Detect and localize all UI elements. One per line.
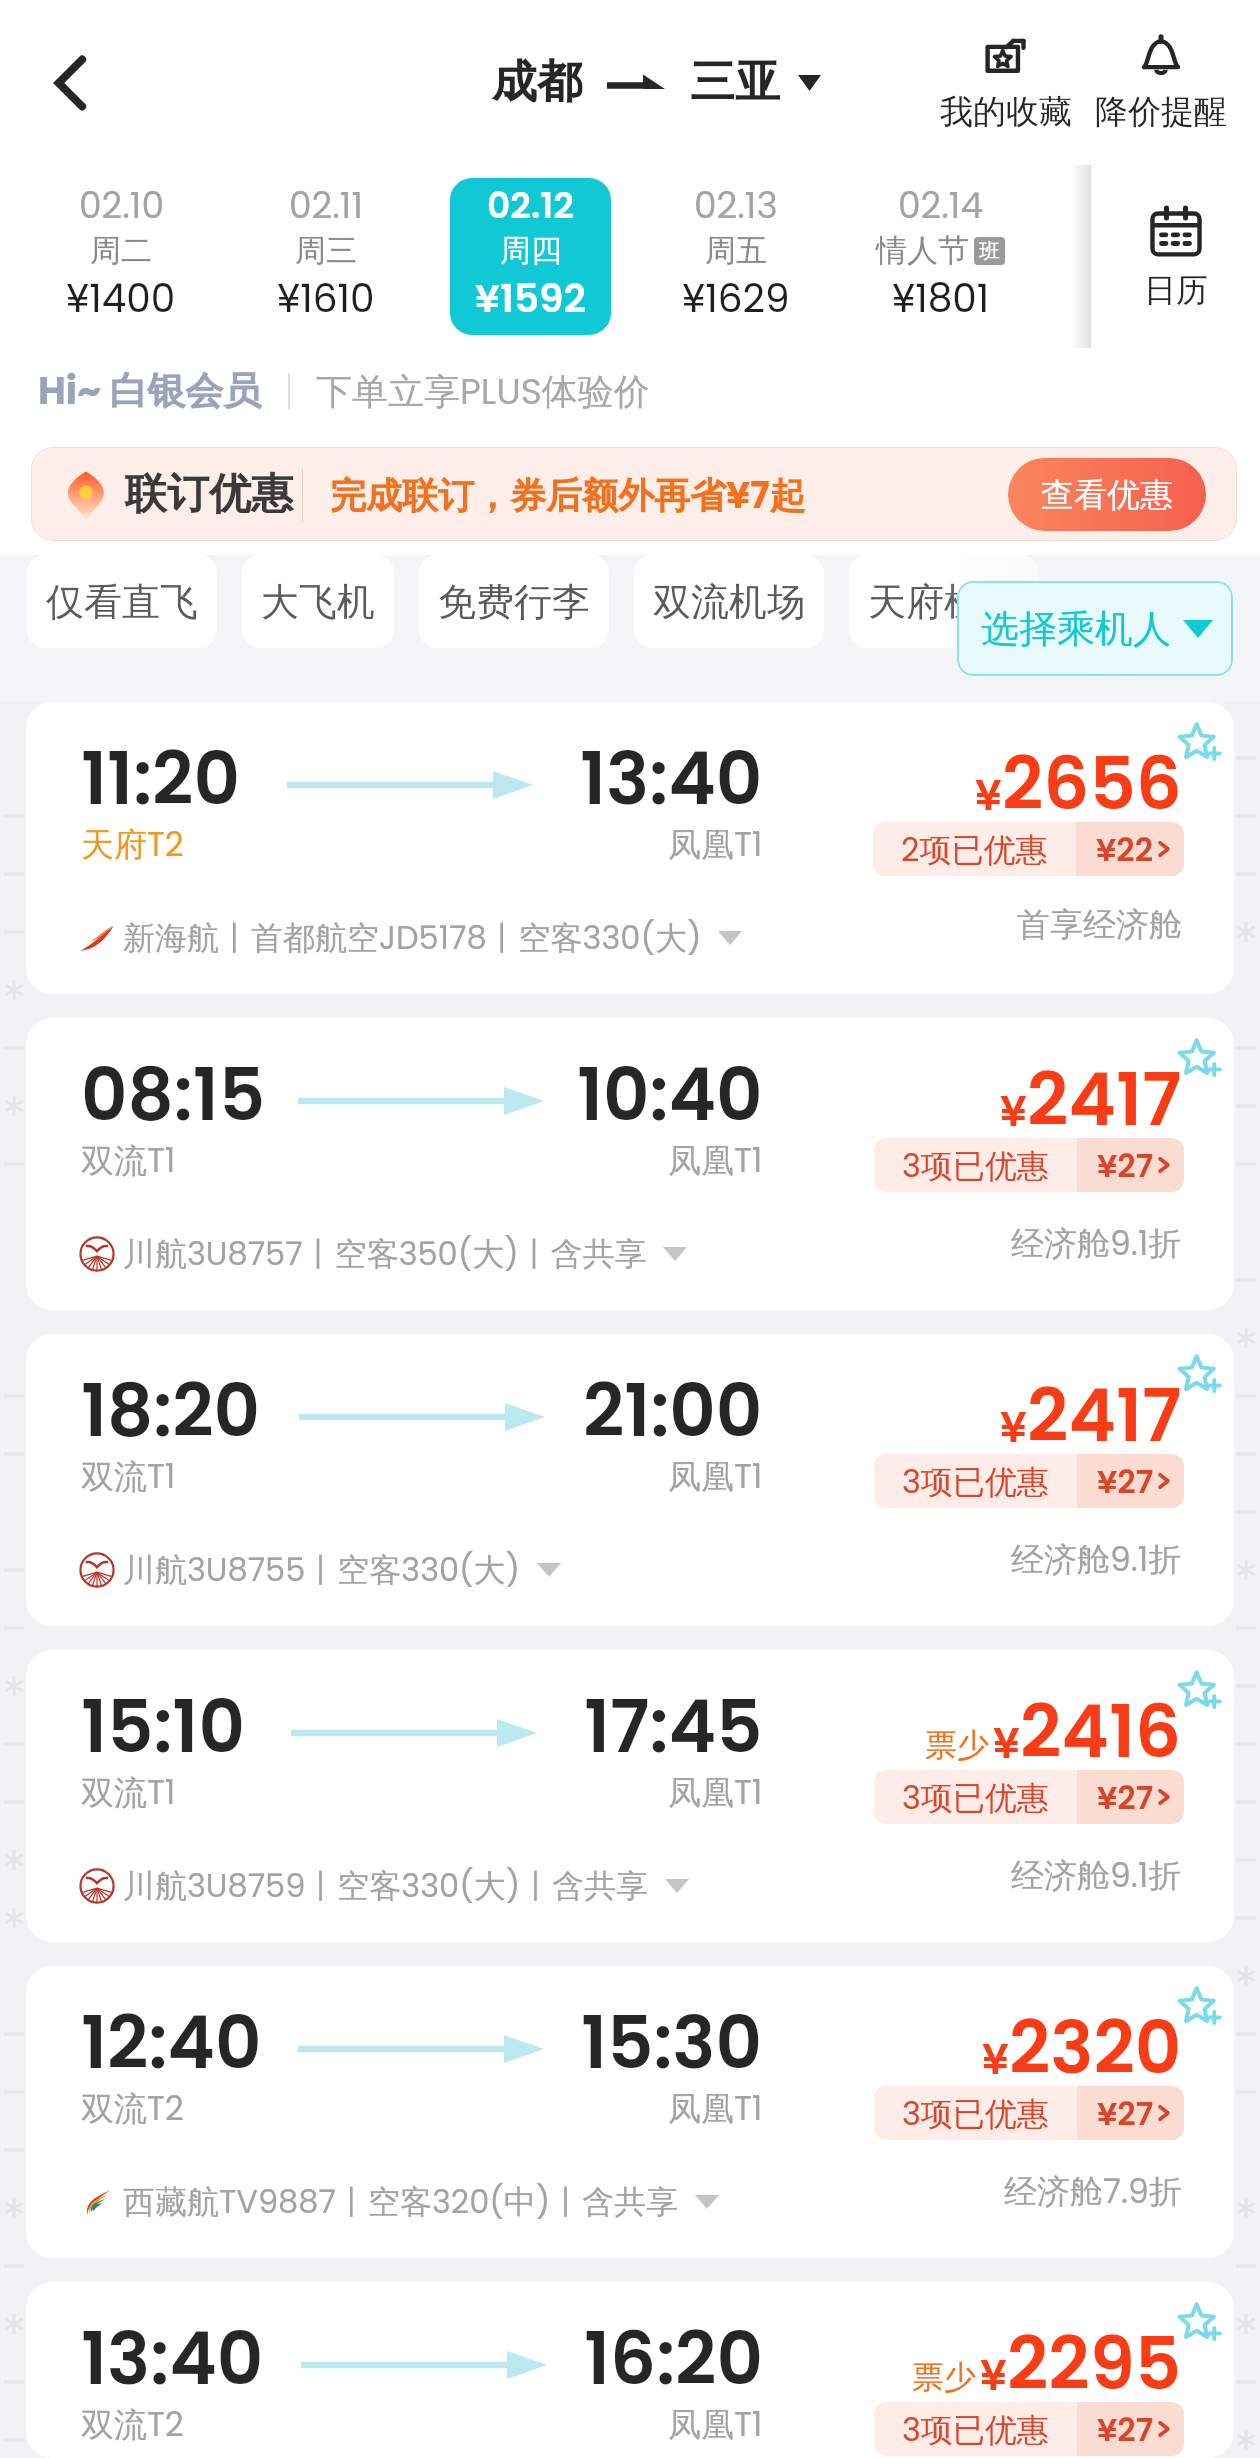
staticText: 川航3U8755丨空客330(大)	[123, 1547, 521, 1592]
button[interactable]: 双流机场	[634, 555, 824, 648]
staticText: 经济舱9.1折	[1011, 1536, 1182, 1582]
staticText: 下单立享PLUS体验价	[316, 366, 650, 416]
staticText: 完成联订，券后额外再省¥7起	[330, 470, 806, 520]
button[interactable]: Add to favourites	[1167, 2291, 1233, 2357]
staticText: 15:10	[81, 1676, 245, 1777]
staticText: 11:20	[81, 728, 240, 829]
staticText: ¥	[993, 1714, 1020, 1773]
button[interactable]: 02.12	[428, 165, 633, 348]
staticText: 双流T2	[81, 2085, 184, 2131]
button[interactable]: 3项已优惠	[874, 1454, 1184, 1508]
staticText: 18:20	[81, 1360, 261, 1461]
staticText: 双流机场	[653, 578, 805, 626]
staticText: ¥27	[1097, 2407, 1154, 2452]
button[interactable]: 13:40	[26, 2282, 1234, 2458]
staticText: ¥1629	[682, 271, 790, 326]
staticText: 仅看直飞	[46, 578, 198, 626]
staticText: 川航3U8759丨空客330(大)丨含共享	[123, 1863, 649, 1908]
staticText: 班	[979, 238, 1000, 264]
staticText: 凤凰T1	[668, 2401, 763, 2447]
staticText: 免费行李	[438, 578, 590, 626]
staticText: 08:15	[81, 1044, 266, 1145]
button[interactable]: 02.10	[18, 165, 223, 348]
button[interactable]: 02.11	[223, 165, 428, 348]
button[interactable]: 联订优惠	[31, 447, 1237, 541]
button[interactable]: 我的收藏	[928, 13, 1083, 153]
button[interactable]: 降价提醒	[1083, 13, 1238, 153]
staticText: ¥	[1000, 1082, 1027, 1141]
button[interactable]: 12:40	[26, 1966, 1234, 2258]
staticText: ¥	[975, 766, 1002, 825]
button[interactable]: 02.14	[838, 165, 1043, 348]
button[interactable]: 11:20	[26, 702, 1234, 994]
staticText: Hi~ 白银会员	[38, 364, 262, 417]
staticText: 2320	[1009, 1997, 1182, 2098]
button[interactable]: Add to favourites	[1167, 711, 1233, 777]
staticText: 凤凰T1	[668, 1769, 763, 1815]
staticText: ¥27	[1097, 1775, 1154, 1820]
button[interactable]: 天府机场	[849, 555, 1039, 648]
button[interactable]: 仅看直飞	[27, 555, 217, 648]
staticText: ¥	[1000, 1398, 1027, 1457]
staticText: 15:30	[581, 1992, 763, 2093]
staticText: 2295	[1007, 2313, 1182, 2414]
staticText: 经济舱9.1折	[1011, 1220, 1182, 1266]
staticText: 票少	[925, 1725, 989, 1765]
staticText: 西藏航TV9887丨空客320(中)丨含共享	[123, 2179, 679, 2224]
staticText: ¥27	[1097, 1143, 1154, 1188]
staticText: 票少	[912, 2357, 976, 2397]
button[interactable]: 日历	[1091, 165, 1260, 348]
staticText: 天府机场	[868, 578, 1020, 626]
staticText: ¥22	[1096, 827, 1154, 872]
button[interactable]: 免费行李	[419, 555, 609, 648]
button[interactable]: Add to favourites	[1167, 1659, 1233, 1725]
staticText: 双流T1	[81, 1769, 176, 1815]
staticText: ¥1400	[66, 271, 176, 326]
button[interactable]: Hi~ 白银会员	[0, 348, 1260, 432]
staticText: 13:40	[580, 728, 763, 829]
button[interactable]: Add to favourites	[1167, 1975, 1233, 2041]
button[interactable]: Add to favourites	[1167, 1027, 1233, 1093]
staticText: 降价提醒	[1095, 91, 1227, 133]
staticText: 我的收藏	[940, 91, 1072, 133]
staticText: 日历	[1144, 270, 1208, 310]
staticText: 大飞机	[261, 578, 375, 626]
staticText: 02.12	[487, 180, 574, 230]
button[interactable]: 查看优惠	[1008, 458, 1206, 531]
button[interactable]: 3项已优惠	[874, 2402, 1184, 2456]
staticText: 3项已优惠	[902, 2407, 1049, 2452]
button[interactable]: 大飞机	[242, 555, 394, 648]
staticText: 02.13	[694, 180, 778, 230]
staticText: 12:40	[81, 1992, 262, 2093]
button[interactable]: 选择乘机人	[957, 581, 1233, 676]
button[interactable]: 02.13	[633, 165, 838, 348]
staticText: 2656	[1002, 733, 1182, 834]
staticText: ¥1592	[475, 271, 586, 326]
staticText: 2417	[1027, 1365, 1182, 1466]
button[interactable]: 成都	[492, 54, 821, 111]
button[interactable]: 3项已优惠	[874, 1770, 1184, 1824]
staticText: 02.10	[79, 180, 164, 230]
button[interactable]: 2项已优惠	[873, 822, 1184, 876]
staticText: 川航3U8757丨空客350(大)丨含共享	[123, 1231, 647, 1276]
button[interactable]: Add to favourites	[1167, 1343, 1233, 1409]
button[interactable]: 15:10	[26, 1650, 1234, 1942]
staticText: 3项已优惠	[902, 1775, 1049, 1820]
button[interactable]: 08:15	[26, 1018, 1234, 1310]
button[interactable]: Back	[16, 28, 126, 138]
staticText: 3项已优惠	[902, 1459, 1049, 1504]
staticText: 凤凰T1	[668, 1453, 763, 1499]
staticText: 周四	[500, 231, 562, 270]
staticText: ¥27	[1097, 2091, 1154, 2136]
staticText: 首享经济舱	[1017, 904, 1182, 946]
staticText: 成都	[492, 54, 582, 111]
button[interactable]: 18:20	[26, 1334, 1234, 1626]
staticText: 凤凰T1	[668, 821, 763, 867]
button[interactable]: 3项已优惠	[874, 1138, 1184, 1192]
staticText: ¥	[980, 2346, 1007, 2405]
staticText: 联订优惠	[125, 468, 293, 521]
button[interactable]: 3项已优惠	[874, 2086, 1184, 2140]
staticText: 02.14	[898, 180, 984, 230]
staticText: 天府T2	[81, 821, 184, 867]
staticText: 02.11	[289, 180, 363, 230]
